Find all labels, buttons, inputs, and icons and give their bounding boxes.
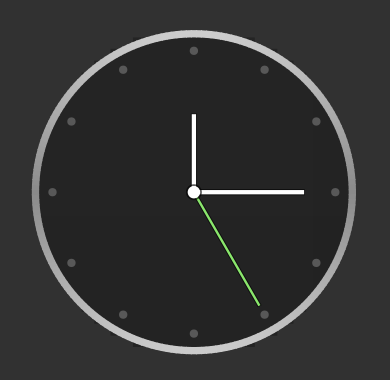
button[interactable]: Clock face, 12:00 xyxy=(0,0,390,380)
